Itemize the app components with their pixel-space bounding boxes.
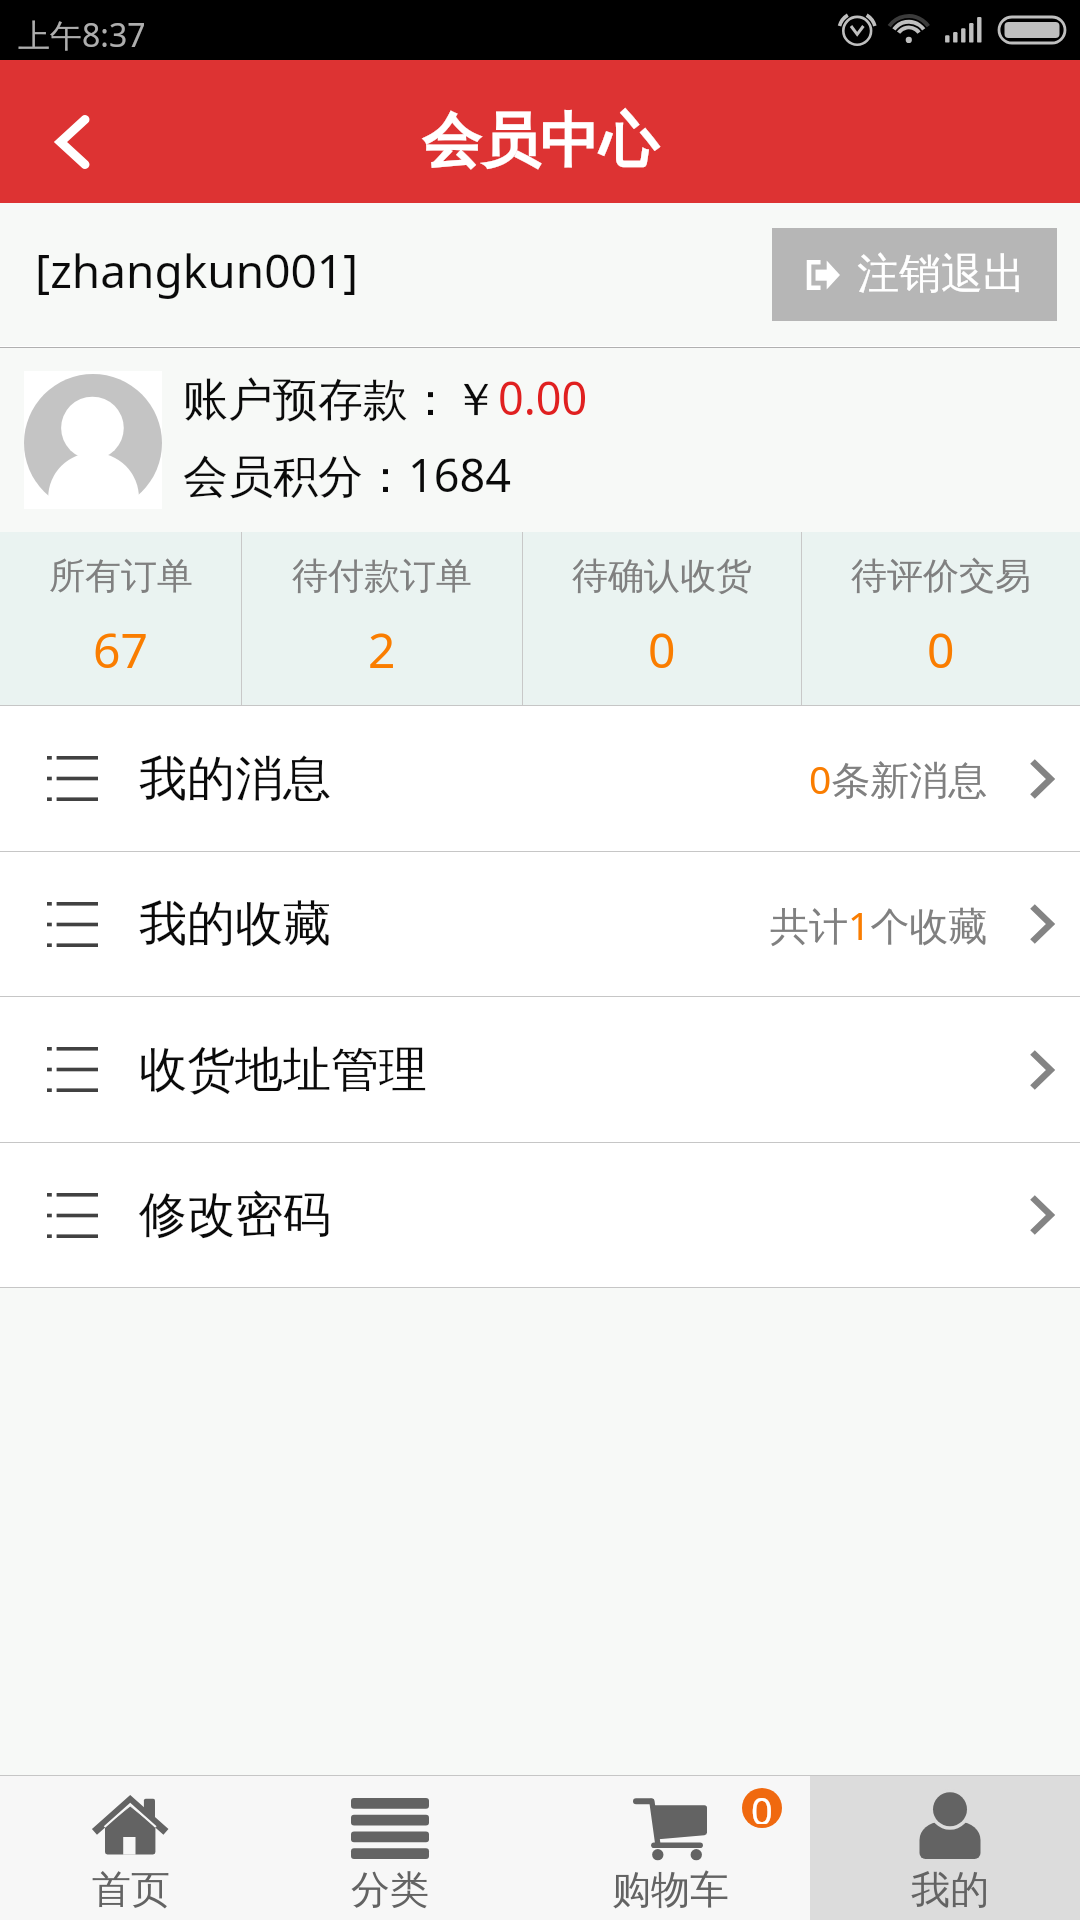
button[interactable]: 待评价交易 (802, 532, 1080, 705)
staticText: 待评价交易 (851, 553, 1031, 598)
staticText: 待确认收货 (572, 553, 752, 598)
button[interactable]: 注销退出 (772, 228, 1057, 321)
staticText: 分类 (351, 1865, 429, 1914)
button[interactable]: 待确认收货 (523, 532, 801, 705)
staticText: 0条新消息 (809, 752, 988, 805)
staticText: 会员积分：1684 (183, 444, 511, 505)
button[interactable]: 所有订单 (0, 532, 241, 705)
staticText: 所有订单 (49, 553, 193, 598)
button[interactable]: 购物车 (540, 1776, 810, 1920)
button[interactable]: 我的收藏 (0, 852, 1080, 996)
button[interactable]: 我的 (810, 1776, 1080, 1920)
button[interactable]: 首页 (0, 1776, 270, 1920)
staticText: 注销退出 (857, 248, 1025, 301)
staticText: 0 (648, 617, 676, 682)
staticText: 首页 (92, 1865, 170, 1914)
staticText: 我的 (911, 1865, 989, 1914)
button[interactable]: 分类 (270, 1776, 540, 1920)
staticText: 待付款订单 (292, 553, 472, 598)
staticText: 共计1个收藏 (770, 898, 988, 951)
staticText: 会员中心 (422, 104, 658, 178)
button[interactable]: Back (0, 60, 150, 203)
staticText: 67 (93, 617, 148, 682)
button[interactable]: 待付款订单 (242, 532, 522, 705)
staticText: 我的消息 (139, 749, 331, 809)
staticText: 0 (751, 1788, 773, 1824)
staticText: [zhangkun001] (35, 239, 359, 302)
button[interactable]: 收货地址管理 (0, 997, 1080, 1142)
staticText: 0 (927, 617, 955, 682)
staticText: 我的收藏 (139, 894, 331, 954)
staticText: 收货地址管理 (139, 1040, 427, 1100)
staticText: 购物车 (612, 1865, 729, 1914)
staticText: 修改密码 (139, 1185, 331, 1245)
staticText: 2 (368, 617, 396, 682)
staticText: 上午8:37 (18, 13, 146, 57)
button[interactable]: 修改密码 (0, 1143, 1080, 1287)
button[interactable]: 我的消息 (0, 706, 1080, 851)
staticText: 账户预存款：￥0.00 (183, 367, 588, 428)
